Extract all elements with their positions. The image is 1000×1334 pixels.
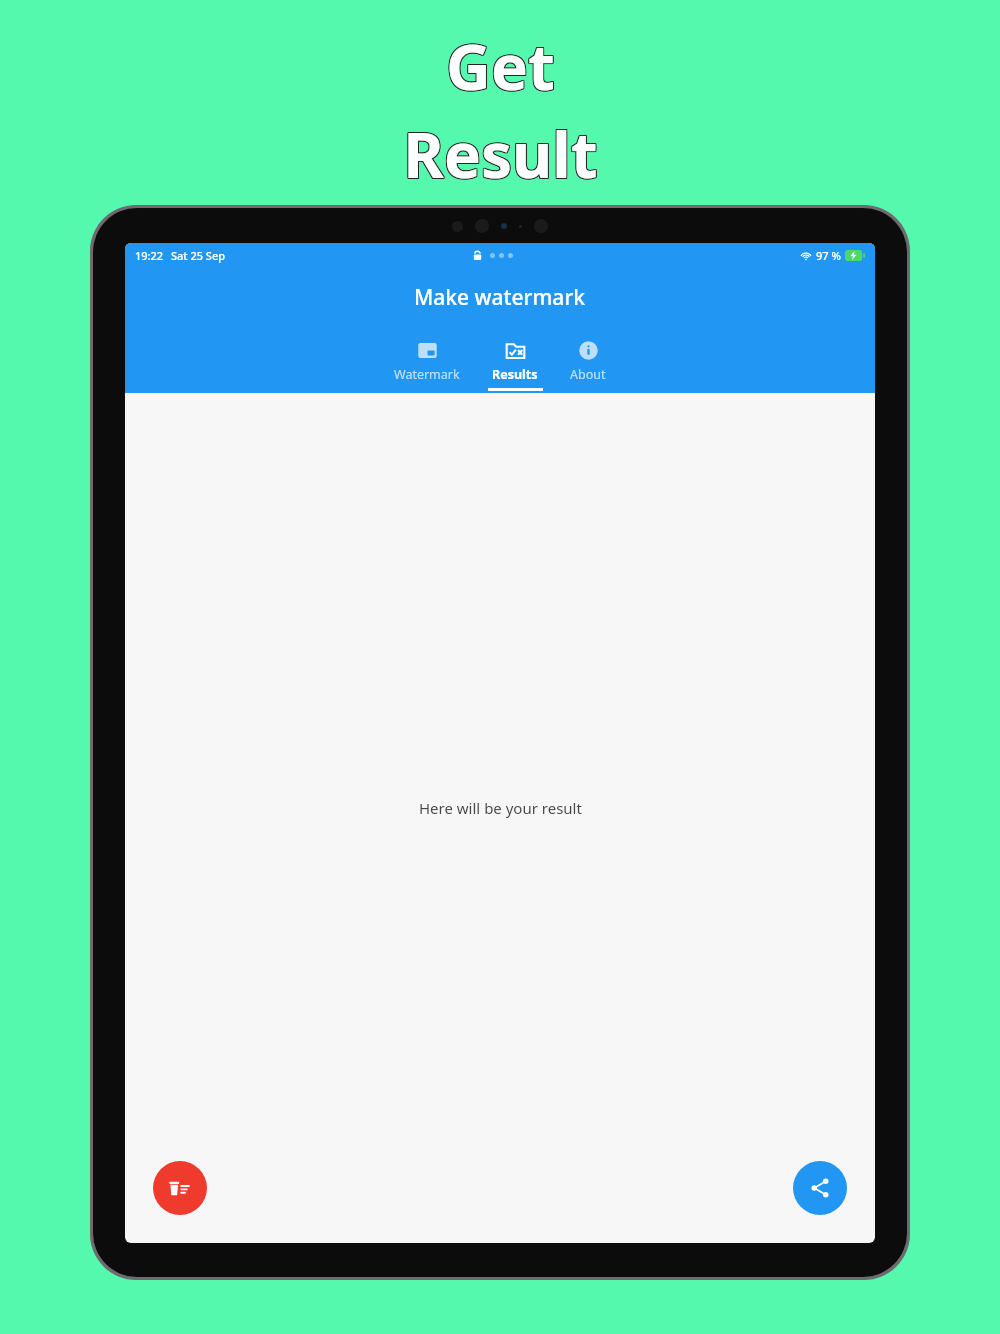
staticText: Result (404, 113, 599, 197)
staticText: Get (445, 25, 554, 109)
staticText: Sat 25 Sep (171, 248, 226, 263)
staticText: Result (402, 113, 597, 197)
staticText: Result (404, 111, 599, 195)
staticText: About (570, 366, 606, 383)
staticText: Watermark (394, 366, 460, 383)
staticText: 97 % (816, 248, 841, 263)
staticText: Result (403, 112, 598, 196)
staticText: Get (447, 24, 556, 108)
staticText: Result (403, 113, 598, 197)
staticText: Get (447, 25, 556, 109)
staticText: Here will be your result (419, 798, 582, 818)
staticText: Make watermark (414, 283, 586, 312)
button[interactable]: Watermark (377, 334, 477, 391)
staticText: Get (447, 23, 556, 107)
button[interactable]: Delete all results (153, 1161, 207, 1215)
staticText: Result (402, 111, 597, 195)
staticText: Get (446, 23, 555, 107)
button[interactable]: Results (477, 334, 553, 391)
staticText: Result (403, 111, 598, 195)
staticText: Get (446, 25, 555, 109)
staticText: Result (404, 112, 599, 196)
staticText: Get (445, 24, 554, 108)
staticText: 19:22 (135, 248, 164, 263)
staticText: Result (402, 112, 597, 196)
button[interactable]: About (553, 334, 623, 391)
staticText: Get (445, 23, 554, 107)
button[interactable]: Share (793, 1161, 847, 1215)
staticText: Results (492, 366, 538, 383)
staticText: Get (446, 24, 555, 108)
